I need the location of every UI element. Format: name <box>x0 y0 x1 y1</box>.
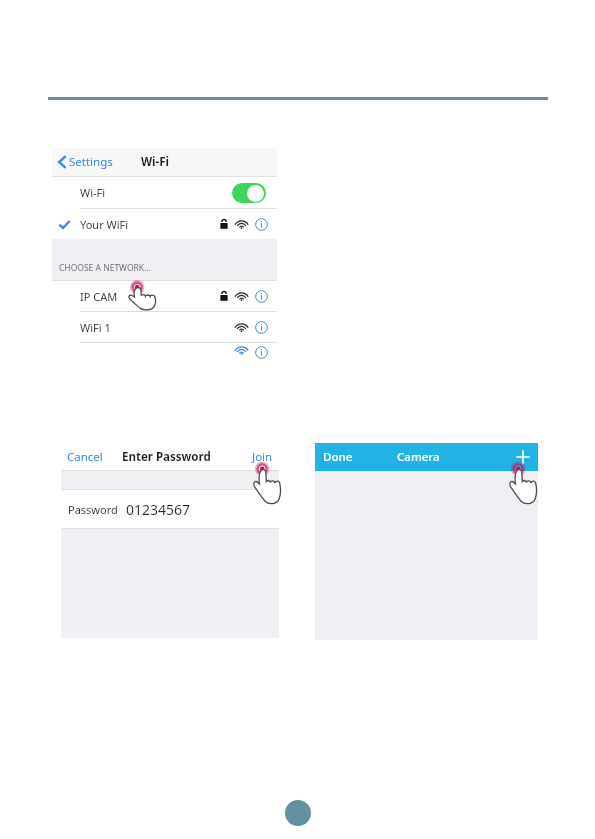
staticText: CHOOSE A NETWORK... <box>59 262 151 274</box>
staticText: 01234567 <box>126 500 191 519</box>
button[interactable]: Add camera <box>514 448 532 466</box>
button[interactable]: More info <box>255 218 268 231</box>
button[interactable]: WiFi 1 <box>52 312 277 342</box>
button[interactable]: Wi-Fi on <box>232 183 266 203</box>
button[interactable]: Cancel <box>67 449 103 465</box>
button[interactable]: Password <box>61 490 279 528</box>
staticText: Settings <box>69 154 113 170</box>
button[interactable]: Settings <box>58 154 113 170</box>
button[interactable]: Done <box>323 449 353 465</box>
staticText: WiFi 1 <box>80 320 111 335</box>
button[interactable]: Wi-Fi <box>52 177 277 208</box>
staticText: Camera <box>397 449 440 465</box>
button[interactable]: Your WiFi <box>52 209 277 239</box>
staticText: Wi-Fi <box>141 154 169 170</box>
button[interactable]: IP CAM <box>52 281 277 311</box>
button[interactable]: Join <box>252 449 273 465</box>
button[interactable]: More info <box>255 290 268 303</box>
staticText: IP CAM <box>80 289 118 304</box>
staticText: Password <box>68 502 118 517</box>
staticText: Enter Password <box>122 449 211 465</box>
staticText: Your WiFi <box>80 217 129 232</box>
button[interactable]: More info <box>255 321 268 334</box>
staticText: Wi-Fi <box>80 185 106 200</box>
